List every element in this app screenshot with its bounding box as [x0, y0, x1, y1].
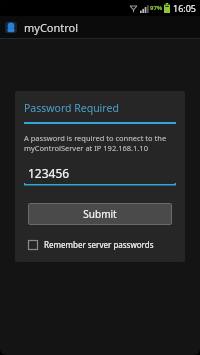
- staticText: A password is required to connect to the…: [24, 133, 176, 153]
- button[interactable]: 123456: [24, 165, 176, 187]
- staticText: 97%: [150, 4, 163, 12]
- staticText: myControl: [24, 20, 79, 35]
- staticText: Password Required: [24, 101, 119, 115]
- button[interactable]: Remember server passwords: [24, 238, 176, 251]
- staticText: Submit: [83, 207, 117, 221]
- staticText: Remember server passwords: [44, 239, 154, 250]
- staticText: 16:05: [173, 2, 197, 14]
- other: App icon: [4, 20, 18, 34]
- button[interactable]: App icon: [0, 16, 200, 38]
- staticText: 123456: [28, 165, 70, 181]
- button[interactable]: Submit: [28, 203, 172, 225]
